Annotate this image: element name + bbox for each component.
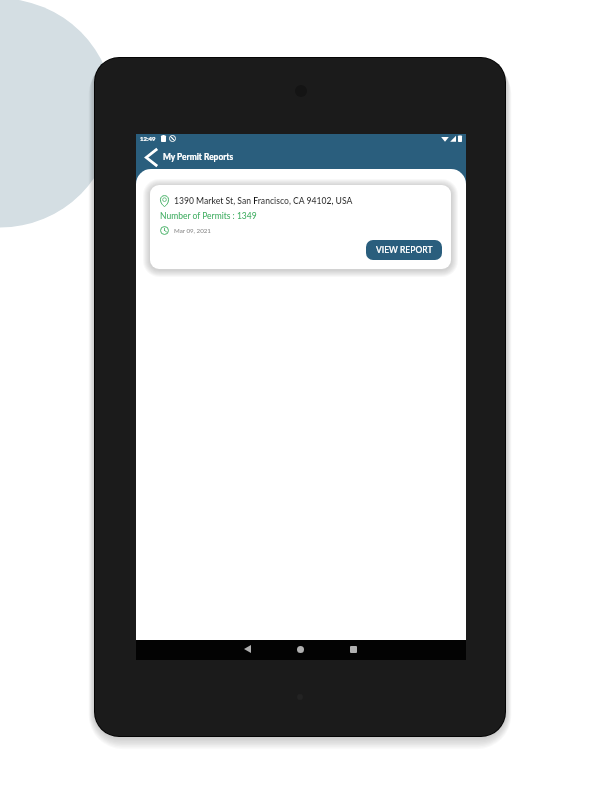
staticText: 1390 Market St, San Francisco, CA 94102,… [174, 196, 353, 206]
staticText: Mar 09, 2021 [174, 227, 211, 234]
button[interactable]: 1390 Market St, San Francisco, CA 94102,… [150, 185, 451, 269]
staticText: 12:49 [140, 135, 156, 142]
button[interactable]: Recent apps [327, 639, 380, 659]
button[interactable]: Back [142, 146, 161, 168]
staticText: VIEW REPORT [376, 245, 433, 255]
staticText: My Permit Reports [163, 152, 234, 162]
button[interactable]: Home [274, 639, 327, 659]
button[interactable]: Back [221, 639, 274, 659]
staticText: Number of Permits : 1349 [160, 211, 257, 221]
button[interactable]: VIEW REPORT [366, 240, 442, 260]
